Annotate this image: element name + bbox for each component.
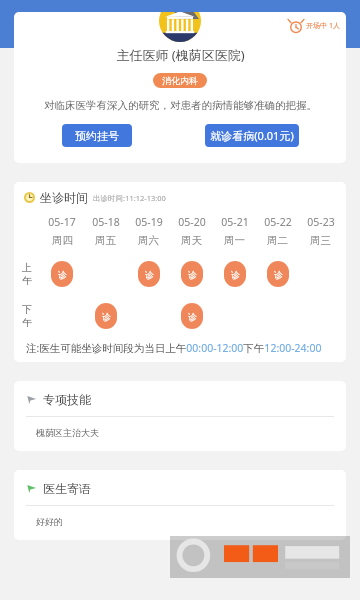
staticText: 周二: [267, 234, 288, 247]
staticText: 周天: [181, 234, 202, 247]
staticText: 坐诊时间: [40, 190, 88, 205]
staticText: 主任医师 (槐荫区医院): [116, 46, 245, 64]
staticText: 上: [22, 261, 32, 274]
staticText: 诊: [102, 311, 111, 322]
staticText: 周四: [52, 234, 73, 247]
staticText: 午: [22, 274, 32, 287]
staticText: 05-21: [221, 215, 249, 229]
staticText: 槐荫区主治大夫: [36, 427, 99, 438]
staticText: 05-23: [307, 215, 335, 229]
button[interactable]: 预约挂号: [62, 124, 132, 147]
button[interactable]: 开场中 1人: [288, 18, 340, 34]
staticText: 午: [22, 316, 32, 329]
staticText: 对临床医学有深入的研究，对患者的病情能够准确的把握。: [44, 99, 317, 112]
button[interactable]: 诊: [51, 261, 73, 287]
button[interactable]: 就诊看病(0.01元): [205, 124, 299, 147]
staticText: 周六: [138, 234, 159, 247]
staticText: 05-17: [48, 215, 76, 229]
button[interactable]: 消化内科: [153, 73, 207, 88]
staticText: 出诊时间:11:12-13:00: [93, 193, 166, 203]
staticText: 05-19: [135, 215, 163, 229]
staticText: 诊: [145, 269, 154, 280]
staticText: 好好的: [36, 516, 63, 527]
staticText: 周三: [310, 234, 331, 247]
button[interactable]: 诊: [267, 261, 289, 287]
staticText: 医生寄语: [43, 481, 91, 496]
staticText: 就诊看病(0.01元): [210, 128, 294, 143]
staticText: 周一: [224, 234, 245, 247]
staticText: 周五: [95, 234, 116, 247]
button[interactable]: 诊: [138, 261, 160, 287]
button[interactable]: 诊: [181, 261, 203, 287]
staticText: 05-22: [264, 215, 292, 229]
staticText: 05-20: [178, 215, 206, 229]
staticText: 诊: [188, 269, 197, 280]
staticText: 专项技能: [43, 392, 91, 407]
staticText: 诊: [231, 269, 240, 280]
button[interactable]: Doctor avatar: [159, 12, 201, 42]
button[interactable]: 诊: [224, 261, 246, 287]
staticText: 诊: [188, 311, 197, 322]
button[interactable]: 诊: [95, 303, 117, 329]
staticText: 开场中 1人: [306, 21, 340, 31]
staticText: 05-18: [92, 215, 120, 229]
staticText: 下: [22, 303, 32, 316]
staticText: 注:医生可能坐诊时间段为当日上午00:00-12:00下午12:00-24:00: [26, 341, 322, 355]
staticText: 消化内科: [162, 75, 198, 86]
staticText: 预约挂号: [75, 129, 119, 143]
staticText: 诊: [274, 269, 283, 280]
button[interactable]: 诊: [181, 303, 203, 329]
staticText: 诊: [58, 269, 67, 280]
